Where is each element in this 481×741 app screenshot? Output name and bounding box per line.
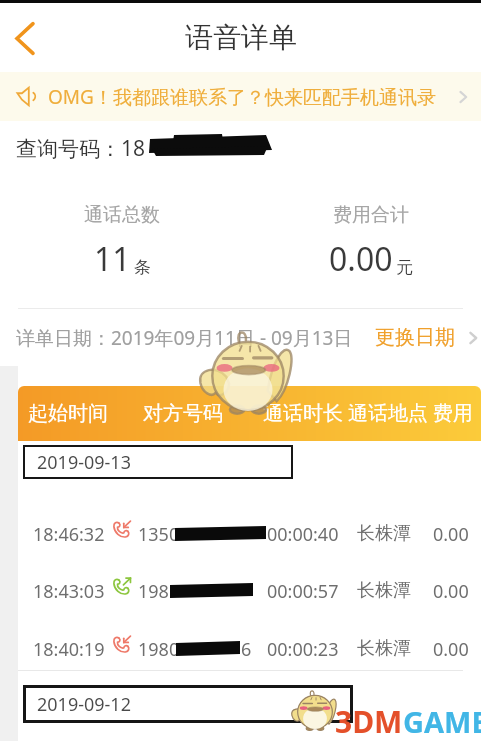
- staticText: 0.00: [433, 522, 469, 544]
- staticText: 0.00: [433, 579, 469, 601]
- button[interactable]: 18:43:03: [18, 579, 481, 601]
- staticText: 长株潭: [357, 637, 411, 659]
- staticText: 18:43:03: [33, 579, 105, 601]
- staticText: 00:00:57: [267, 579, 339, 601]
- staticText: 更换日期: [375, 325, 455, 350]
- staticText: 元: [396, 257, 413, 278]
- staticText: 0.00: [433, 637, 469, 659]
- staticText: 长株潭: [357, 579, 411, 601]
- staticText: 对方号码: [143, 401, 223, 426]
- staticText: 198: [138, 579, 169, 601]
- button[interactable]: 18:40:19: [18, 637, 481, 659]
- staticText: 条: [134, 257, 151, 278]
- staticText: 1980: [138, 637, 180, 659]
- staticText: 2019-09-12: [37, 692, 131, 717]
- staticText: 3DM: [335, 701, 403, 741]
- staticText: 11: [94, 237, 131, 281]
- staticText: 通话地点: [348, 401, 428, 426]
- staticText: OMG！我都跟谁联系了？快来匹配手机通讯录: [48, 84, 436, 110]
- staticText: 6: [241, 637, 252, 659]
- button[interactable]: 18:46:32: [18, 522, 481, 544]
- button[interactable]: OMG！我都跟谁联系了？快来匹配手机通讯录: [0, 72, 481, 121]
- staticText: 2019-09-13: [37, 450, 131, 475]
- staticText: 起始时间: [28, 401, 108, 426]
- staticText: 语音详单: [185, 20, 297, 55]
- staticText: 00:00:40: [267, 522, 339, 544]
- button[interactable]: 更换日期: [375, 325, 481, 350]
- staticText: 18:40:19: [33, 637, 105, 659]
- staticText: 0.00: [329, 237, 393, 281]
- staticText: 通话总数: [84, 203, 160, 227]
- staticText: 00:00:23: [267, 637, 339, 659]
- staticText: 详单日期：2019年09月11日 - 09月13日: [16, 325, 353, 351]
- staticText: 长株潭: [357, 522, 411, 544]
- staticText: 通话时长: [263, 401, 343, 426]
- staticText: 1350: [138, 522, 180, 544]
- staticText: 费用: [433, 401, 473, 426]
- staticText: 18:46:32: [33, 522, 105, 544]
- staticText: 费用合计: [333, 203, 409, 227]
- staticText: 查询号码：18: [16, 134, 146, 160]
- staticText: GAME: [403, 702, 481, 741]
- button[interactable]: Back: [2, 15, 48, 61]
